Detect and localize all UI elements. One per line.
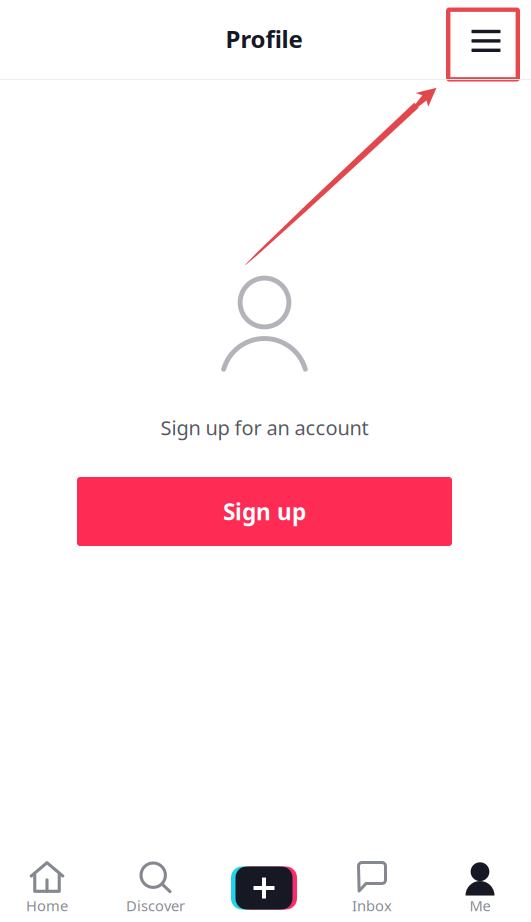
button[interactable]: Sign up (77, 477, 452, 546)
button[interactable]: Create (211, 850, 317, 922)
button[interactable]: Discover (102, 850, 208, 922)
button[interactable]: Me (427, 850, 531, 922)
staticText: Profile (225, 23, 302, 55)
button[interactable]: Inbox (319, 850, 425, 922)
staticText: Sign up for an account (160, 414, 368, 441)
button[interactable]: Menu (446, 7, 520, 81)
staticText: Home (26, 896, 68, 915)
staticText: Sign up (223, 496, 306, 526)
staticText: Inbox (352, 896, 392, 915)
staticText: Me (469, 896, 490, 915)
button[interactable]: Home (0, 850, 100, 922)
staticText: Discover (126, 896, 185, 915)
